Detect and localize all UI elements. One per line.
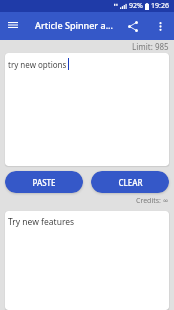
button[interactable]: Share <box>116 13 149 40</box>
staticText: Limit: 985 <box>132 41 169 52</box>
button[interactable]: Try new features <box>5 211 169 310</box>
staticText: 92% <box>129 1 143 11</box>
button[interactable]: CLEAR <box>91 171 169 193</box>
button[interactable]: More options <box>149 13 171 40</box>
staticText: try new options <box>8 59 67 70</box>
staticText: CLEAR <box>118 177 143 188</box>
button[interactable]: PASTE <box>5 171 83 193</box>
staticText: PASTE <box>32 177 56 188</box>
staticText: Credits: ∞ <box>136 196 169 206</box>
staticText: Article Spinner a... <box>35 19 113 31</box>
button[interactable]: Navigation menu <box>0 12 26 40</box>
staticText: Try new features <box>8 216 75 228</box>
staticText: 19:26 <box>151 1 169 11</box>
button[interactable]: try new options <box>5 53 169 166</box>
